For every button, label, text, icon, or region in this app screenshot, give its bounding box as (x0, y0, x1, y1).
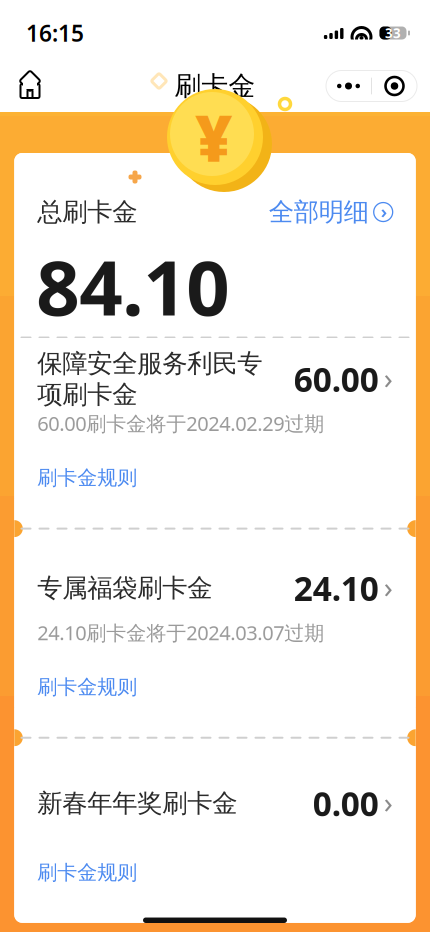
staticText: 60.00 (294, 357, 379, 401)
staticText: 刷卡金 (174, 70, 255, 102)
button[interactable]: 全部明细 (269, 196, 393, 228)
staticText: 刷卡金规则 (37, 860, 137, 885)
staticText: 保障安全服务利民专项刷卡金 (37, 348, 262, 410)
staticText: 总刷卡金 (37, 196, 137, 228)
staticText: 16:15 (26, 18, 84, 48)
staticText: 33 (385, 24, 401, 42)
button[interactable]: 刷卡金规则 (14, 458, 416, 498)
staticText: › (384, 782, 393, 821)
button[interactable]: 刷卡金规则 (14, 667, 416, 707)
button[interactable]: Home (8, 64, 52, 108)
button[interactable]: 刷卡金规则 (14, 852, 416, 893)
staticText: ¥ (195, 94, 233, 179)
button[interactable]: Close (372, 70, 417, 101)
staticText: › (384, 567, 393, 606)
staticText: › (384, 358, 393, 397)
staticText: 刷卡金规则 (37, 466, 137, 490)
staticText: 24.10 (294, 566, 379, 610)
button[interactable]: 新春年年奖刷卡金 (14, 774, 416, 832)
staticText: 60.00刷卡金将于2024.02.29过期 (37, 410, 324, 437)
staticText: 专属福袋刷卡金 (37, 573, 212, 604)
button[interactable]: More (326, 70, 371, 101)
button[interactable]: 专属福袋刷卡金 (14, 559, 416, 617)
staticText: 全部明细 (269, 196, 369, 228)
staticText: 新春年年奖刷卡金 (37, 788, 237, 819)
staticText: 刷卡金规则 (37, 675, 137, 699)
button[interactable]: 保障安全服务利民专项刷卡金 (14, 350, 416, 408)
staticText: 84.10 (36, 236, 229, 336)
staticText: › (381, 199, 387, 223)
staticText: 24.10刷卡金将于2024.03.07过期 (37, 619, 324, 646)
staticText: 0.00 (313, 781, 379, 825)
